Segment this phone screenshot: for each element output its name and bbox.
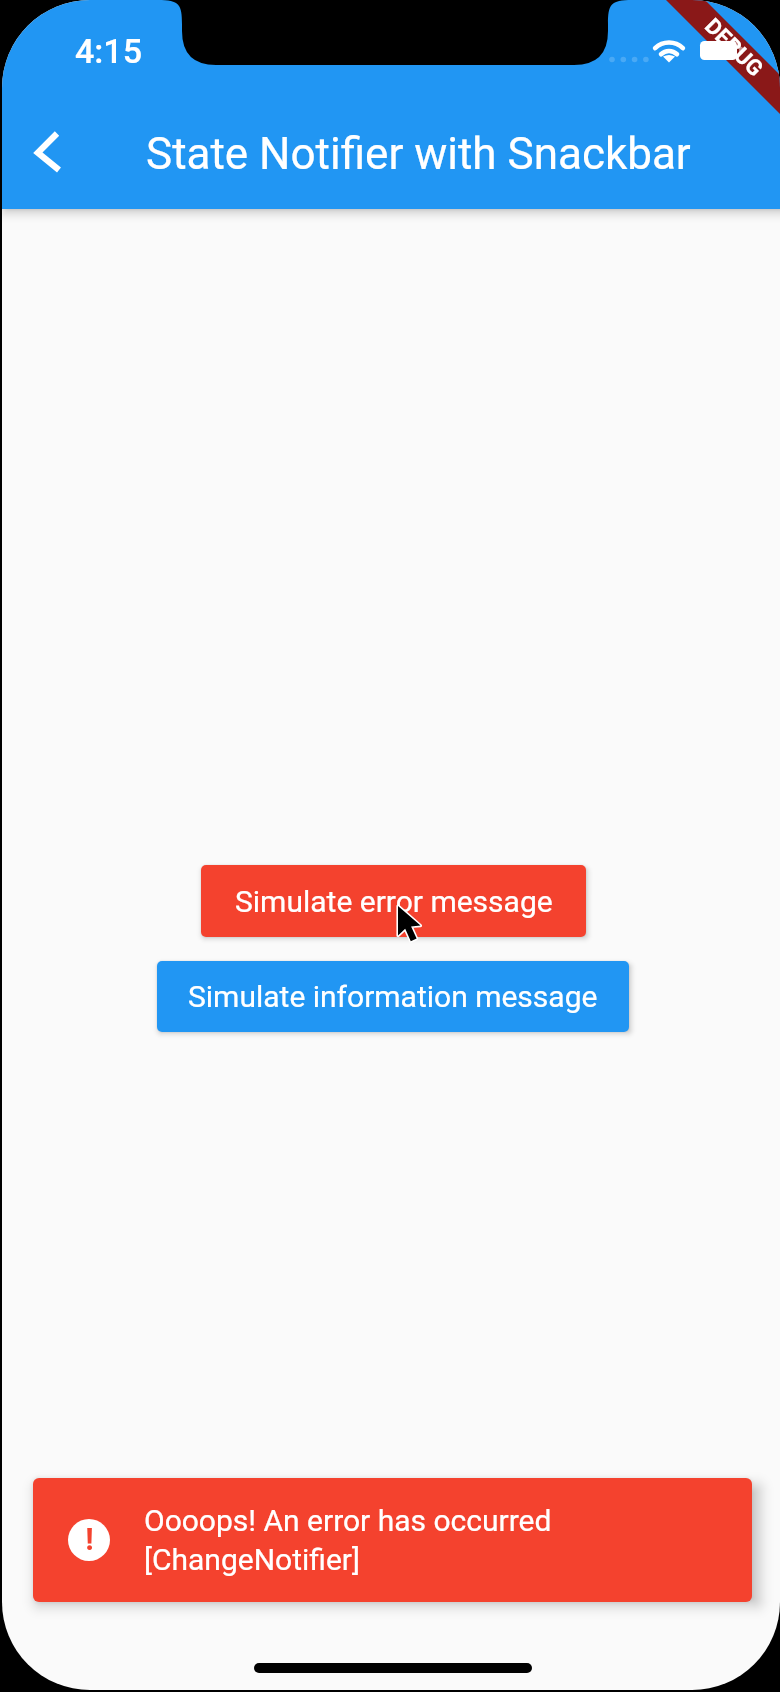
- staticText: 4:15: [75, 31, 142, 71]
- button[interactable]: Simulate information message: [157, 961, 629, 1032]
- staticText: DEBUG: [699, 13, 769, 83]
- button[interactable]: Back: [16, 118, 80, 182]
- staticText: Simulate error message: [235, 884, 553, 919]
- staticText: State Notifier with Snackbar: [146, 128, 691, 180]
- staticText: Oooops! An error has occurred [ChangeNot…: [144, 1503, 552, 1577]
- button[interactable]: !: [33, 1478, 752, 1602]
- staticText: !: [85, 1521, 94, 1557]
- staticText: Simulate information message: [188, 979, 598, 1014]
- button[interactable]: Simulate error message: [201, 865, 586, 937]
